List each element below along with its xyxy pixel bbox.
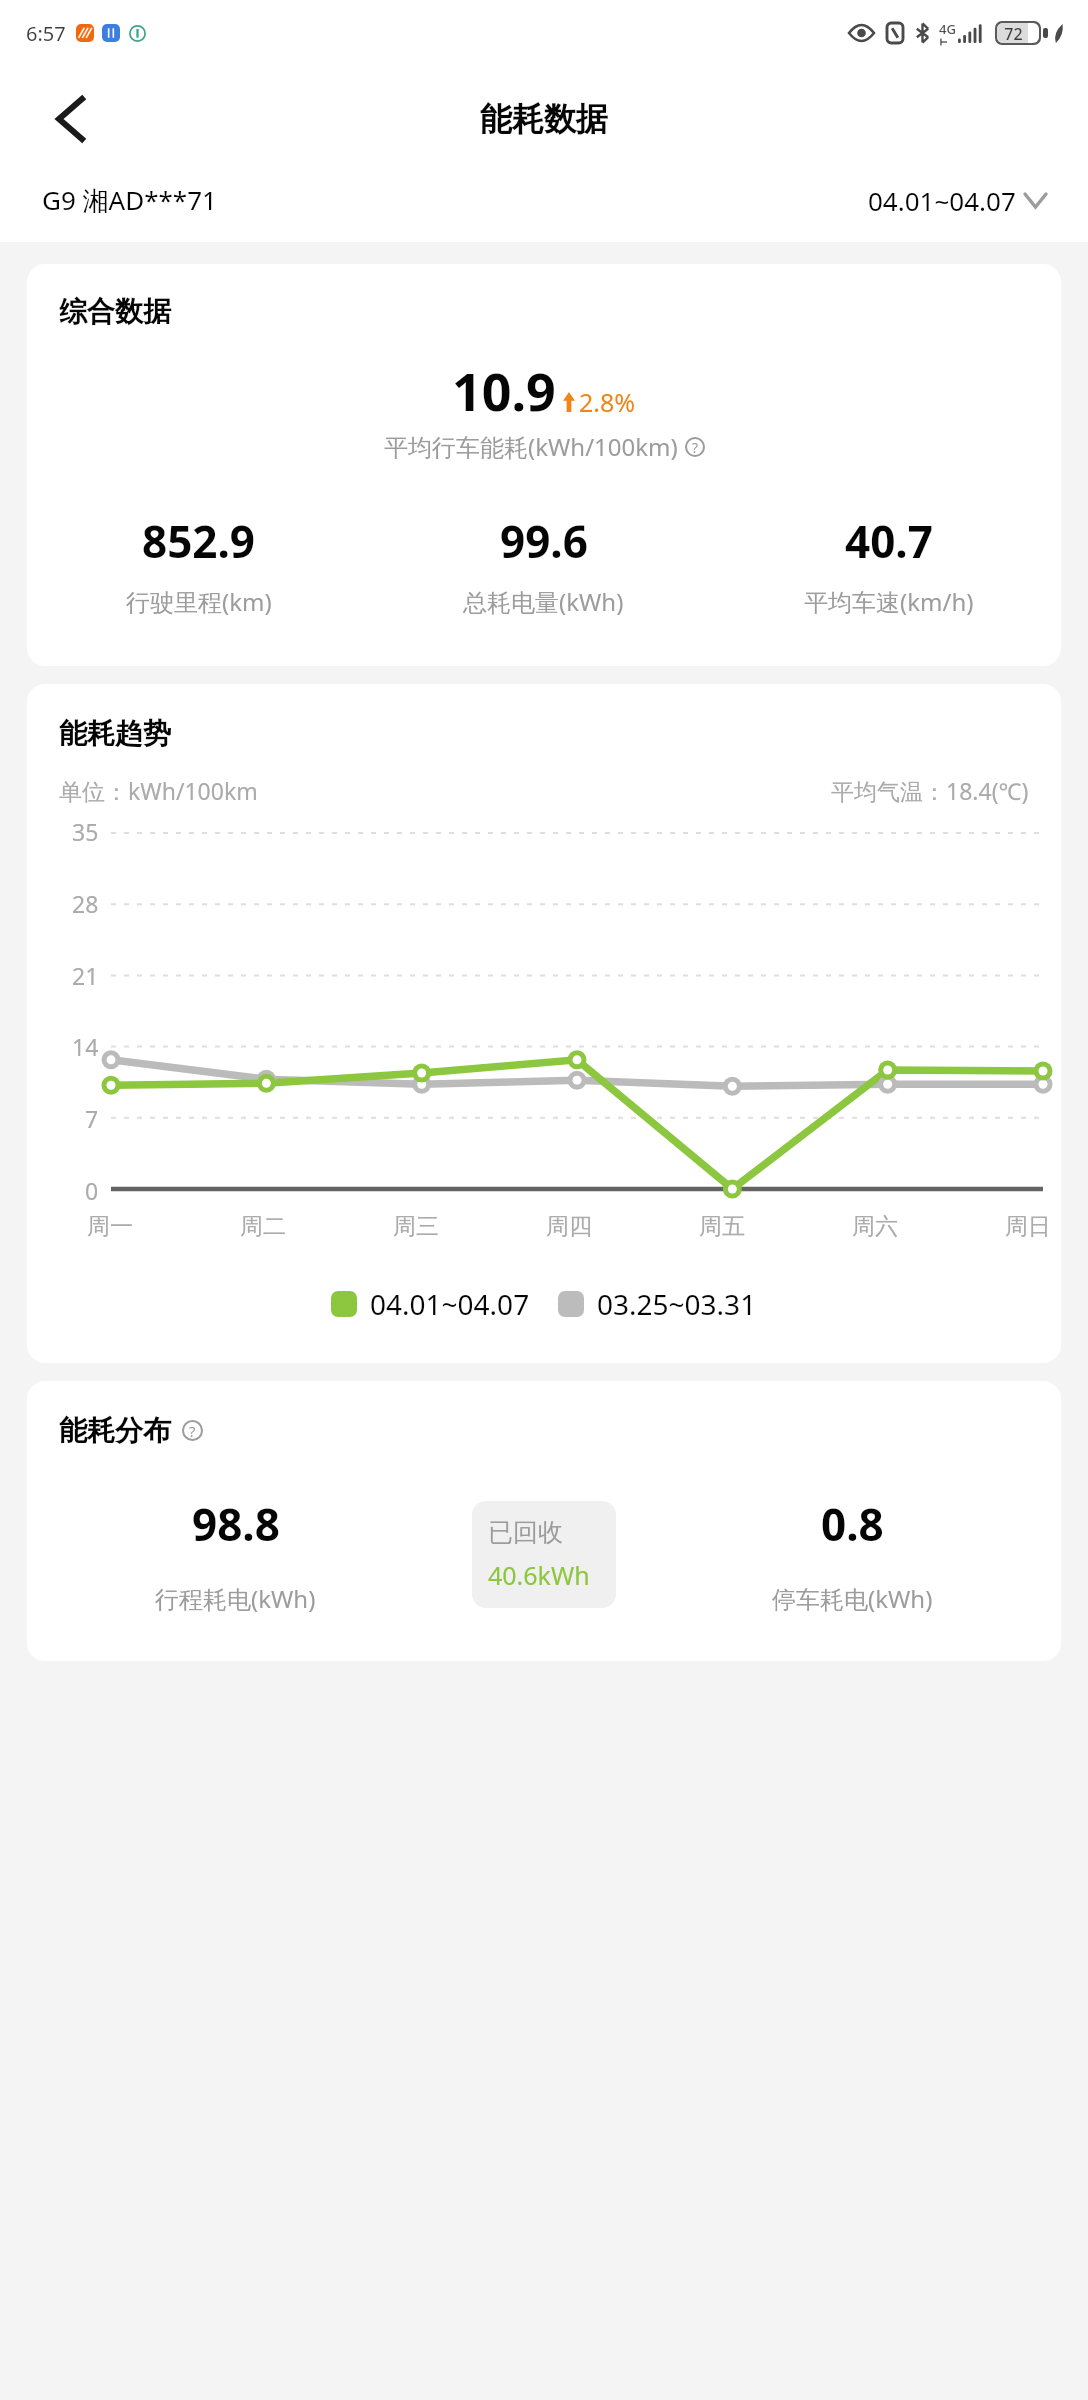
staticText: 行驶里程(km) [126,585,272,618]
button[interactable]: 04.01~04.07 [331,1285,530,1323]
button[interactable]: 04.01~04.07 [868,183,1046,218]
button[interactable]: 98.8 [27,1494,444,1615]
staticText: 周五 [699,1212,745,1241]
staticText: 已回收 [488,1517,563,1548]
staticText: 40.6kWh [488,1558,590,1592]
button[interactable]: 99.6 [371,511,716,618]
staticText: 4G [939,20,956,38]
staticText: 7 [85,1103,99,1134]
button[interactable]: 40.7 [716,511,1061,618]
staticText: 0.8 [821,1494,884,1554]
staticText: 2.8% [579,385,636,419]
staticText: 10.9 [452,355,556,426]
staticText: 行程耗电(kWh) [155,1582,316,1615]
staticText: 周六 [852,1212,898,1241]
staticText: 6:57 [26,20,66,47]
button[interactable]: Back [38,87,102,151]
staticText: 综合数据 [59,294,171,329]
staticText: 72 [997,23,1030,43]
staticText: 平均车速(km/h) [804,585,974,618]
staticText: 28 [72,888,99,919]
staticText: 周一 [87,1212,133,1241]
staticText: 平均气温：18.4(℃) [831,775,1029,806]
staticText: 能耗数据 [480,99,608,139]
staticText: 21 [72,960,99,991]
staticText: 852.9 [142,511,256,571]
staticText: 0 [85,1175,99,1206]
staticText: 平均行车能耗(kWh/100km) [384,430,678,463]
staticText: 能耗趋势 [59,716,171,751]
button[interactable]: 03.25~03.31 [558,1285,757,1323]
staticText: 04.01~04.07 [370,1285,530,1323]
staticText: 周二 [240,1212,286,1241]
button[interactable]: 0.8 [644,1494,1061,1615]
staticText: 04.01~04.07 [868,183,1016,218]
staticText: G9 湘AD***71 [42,182,217,218]
staticText: ? [692,438,699,457]
staticText: 99.6 [500,511,588,571]
staticText: 周四 [546,1212,592,1241]
button[interactable]: 852.9 [27,511,371,618]
staticText: ? [189,1421,196,1441]
staticText: 总耗电量(kWh) [463,585,624,618]
staticText: 周三 [393,1212,439,1241]
staticText: 03.25~03.31 [597,1285,757,1323]
staticText: 停车耗电(kWh) [772,1582,933,1615]
staticText: 40.7 [845,511,933,571]
staticText: 单位：kWh/100km [59,775,258,806]
staticText: 98.8 [192,1494,280,1554]
staticText: 14 [72,1031,99,1062]
staticText: 35 [72,816,99,847]
staticText: 周日 [1005,1212,1051,1241]
staticText: 能耗分布 [59,1413,171,1448]
